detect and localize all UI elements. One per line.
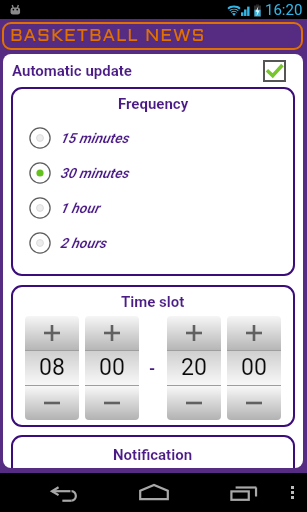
button[interactable]: Recent apps — [204, 473, 284, 512]
button[interactable]: Increase — [85, 316, 139, 350]
staticText: Frequency — [118, 95, 189, 113]
staticText: 30 minutes — [60, 165, 129, 181]
staticText: 00 — [99, 354, 125, 381]
button[interactable]: Back — [0, 473, 90, 512]
button[interactable]: Decrease — [227, 386, 281, 420]
staticText: 2 hours — [60, 235, 107, 251]
button[interactable]: Home — [109, 473, 199, 512]
staticText: Notification — [113, 446, 193, 464]
staticText: 00 — [241, 354, 267, 381]
button[interactable]: 30 minutes — [11, 155, 295, 190]
staticText: - — [149, 359, 156, 378]
staticText: 20 — [181, 354, 207, 381]
button[interactable]: Automatic update — [3, 54, 303, 87]
button[interactable]: More options — [278, 473, 306, 512]
staticText: 1 hour — [60, 200, 100, 216]
button[interactable]: Decrease — [25, 386, 79, 420]
button[interactable]: Increase — [25, 316, 79, 350]
button[interactable]: 2 hours — [11, 225, 295, 260]
staticText: 16:20 — [265, 1, 303, 19]
staticText: BASKETBALL NEWS — [10, 28, 206, 45]
button[interactable]: Decrease — [85, 386, 139, 420]
staticText: 15 minutes — [60, 130, 129, 146]
button[interactable]: Decrease — [167, 386, 221, 420]
button[interactable]: 15 minutes — [11, 120, 295, 155]
button[interactable]: Increase — [167, 316, 221, 350]
button[interactable]: Increase — [227, 316, 281, 350]
staticText: 08 — [39, 354, 65, 381]
button[interactable]: Notification — [11, 435, 295, 468]
staticText: Automatic update — [12, 62, 132, 80]
staticText: Time slot — [121, 293, 185, 311]
button[interactable]: 1 hour — [11, 190, 295, 225]
